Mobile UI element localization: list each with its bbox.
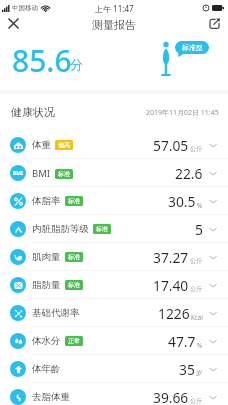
staticText: 37.27 <box>153 248 189 267</box>
staticText: % <box>197 201 203 209</box>
staticText: 47.7 <box>168 332 196 351</box>
staticText: 公斤 <box>190 145 203 153</box>
staticText: 公斤 <box>190 257 203 265</box>
staticText: 上午 11:47 <box>95 3 134 14</box>
button[interactable]: Share <box>203 12 225 34</box>
staticText: 基础代谢率 <box>32 307 80 319</box>
staticText: 体年龄 <box>32 363 61 375</box>
staticText: 30.5 <box>168 192 196 211</box>
staticText: 岁 <box>196 369 203 377</box>
staticText: 脂肪量 <box>32 279 61 291</box>
staticText: 标准型 <box>182 43 203 52</box>
staticText: 正常 <box>68 337 80 345</box>
staticText: 2019年11月02日 11:45 <box>146 108 219 118</box>
button[interactable]: 基础代谢率 <box>0 299 228 327</box>
staticText: 5 <box>195 220 203 239</box>
staticText: 标准 <box>68 253 80 261</box>
staticText: 测量报告 <box>92 18 136 32</box>
button[interactable]: 内脏脂肪等级 <box>0 215 228 243</box>
staticText: 标准 <box>68 197 80 205</box>
staticText: 标准 <box>68 281 80 289</box>
button[interactable]: 体重 <box>0 131 228 159</box>
button[interactable]: 体水分 <box>0 327 228 355</box>
staticText: BMI <box>32 167 51 180</box>
staticText: 肌肉量 <box>32 251 61 263</box>
staticText: Kcal <box>191 313 203 321</box>
button[interactable]: 去脂体重 <box>0 383 228 405</box>
staticText: 体脂率 <box>32 195 61 207</box>
staticText: 1226 <box>158 304 190 323</box>
staticText: 35 <box>179 360 195 379</box>
staticText: 健康状况 <box>11 105 55 119</box>
button[interactable]: Close <box>2 12 24 34</box>
staticText: 中国移动 <box>12 4 38 12</box>
staticText: 85.6 <box>12 40 72 81</box>
staticText: 17.40 <box>153 276 189 295</box>
button[interactable]: 脂肪量 <box>0 271 228 299</box>
staticText: 内脏脂肪等级 <box>32 223 89 235</box>
staticText: 39.66 <box>153 388 189 405</box>
staticText: 公斤 <box>190 397 203 405</box>
button[interactable]: BMI <box>0 159 228 187</box>
staticText: 标准 <box>58 170 70 178</box>
button[interactable]: 肌肉量 <box>0 243 228 271</box>
staticText: 分 <box>70 56 83 72</box>
staticText: 去脂体重 <box>32 391 70 403</box>
staticText: 体水分 <box>32 335 61 347</box>
staticText: 体重 <box>32 139 51 151</box>
staticText: 标准 <box>96 225 108 233</box>
staticText: 偏高 <box>58 141 70 149</box>
button[interactable]: 体年龄 <box>0 355 228 383</box>
button[interactable]: 体脂率 <box>0 187 228 215</box>
staticText: 22.6 <box>175 164 203 183</box>
staticText: 57.05 <box>153 136 189 155</box>
staticText: BMI <box>13 170 23 177</box>
staticText: 公斤 <box>190 285 203 293</box>
staticText: % <box>197 341 203 349</box>
